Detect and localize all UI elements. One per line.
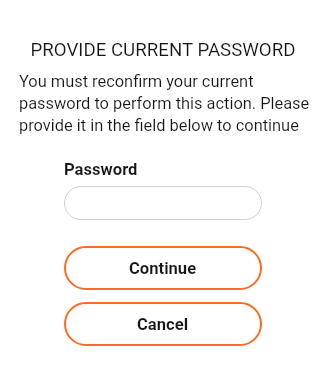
staticText: Password xyxy=(64,160,138,179)
button[interactable]: Cancel xyxy=(64,302,262,346)
staticText: Continue xyxy=(129,259,197,278)
staticText: PROVIDE CURRENT PASSWORD xyxy=(0,39,326,61)
staticText: Cancel xyxy=(137,315,189,334)
button[interactable]: Continue xyxy=(64,246,262,290)
button[interactable]: Password field xyxy=(64,186,262,220)
staticText: You must reconfirm your current password… xyxy=(19,72,319,135)
